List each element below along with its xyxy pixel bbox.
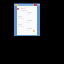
button[interactable] xyxy=(17,23,37,27)
button[interactable] xyxy=(17,19,37,23)
button[interactable] xyxy=(17,11,37,15)
button[interactable] xyxy=(17,15,37,19)
button[interactable] xyxy=(17,27,37,31)
button[interactable] xyxy=(17,7,37,11)
